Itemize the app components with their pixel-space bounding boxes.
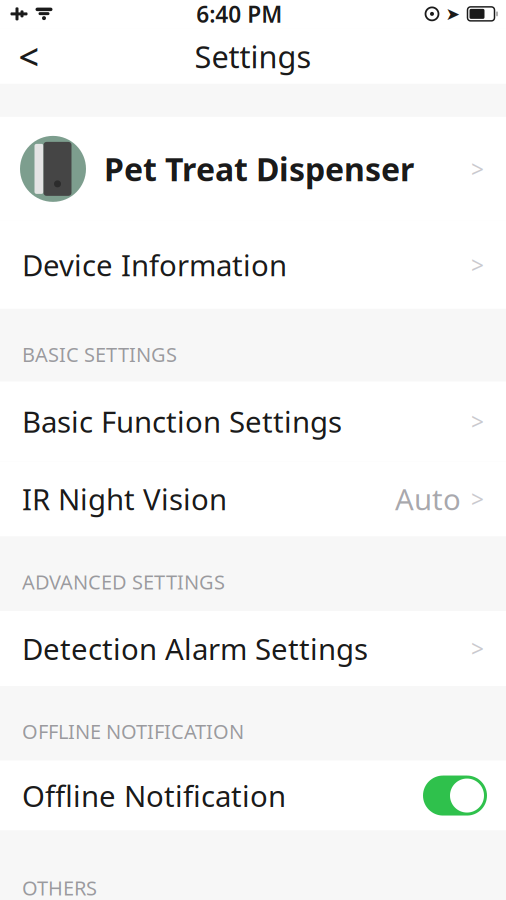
staticText: ➤ bbox=[445, 4, 460, 24]
staticText: > bbox=[471, 484, 484, 514]
staticText: > bbox=[471, 406, 484, 436]
button[interactable]: IR Night Vision bbox=[0, 461, 506, 536]
staticText: IR Night Vision bbox=[22, 479, 227, 518]
staticText: > bbox=[471, 633, 484, 663]
staticText: Offline Notification bbox=[22, 776, 286, 815]
button[interactable]: Back bbox=[6, 33, 52, 79]
staticText: < bbox=[18, 32, 39, 80]
staticText: Pet Treat Dispenser bbox=[104, 148, 414, 190]
staticText: Auto bbox=[395, 479, 461, 518]
button[interactable]: Detection Alarm Settings bbox=[0, 611, 506, 686]
staticText: ADVANCED SETTINGS bbox=[22, 568, 225, 595]
staticText: BASIC SETTINGS bbox=[22, 341, 177, 367]
staticText: OTHERS bbox=[22, 875, 97, 900]
staticText: Basic Function Settings bbox=[22, 402, 342, 441]
button[interactable]: Pet Treat Dispenser bbox=[0, 117, 506, 221]
staticText: 6:40 PM bbox=[196, 0, 282, 29]
button[interactable]: Offline Notification bbox=[0, 761, 506, 831]
staticText: > bbox=[471, 250, 484, 280]
button[interactable]: Basic Function Settings bbox=[0, 381, 506, 461]
staticText: > bbox=[471, 154, 484, 184]
staticText: Detection Alarm Settings bbox=[22, 629, 368, 668]
button[interactable]: Device Information bbox=[0, 221, 506, 309]
staticText: Settings bbox=[194, 36, 311, 77]
staticText: OFFLINE NOTIFICATION bbox=[22, 718, 244, 745]
staticText: Device Information bbox=[22, 245, 287, 284]
